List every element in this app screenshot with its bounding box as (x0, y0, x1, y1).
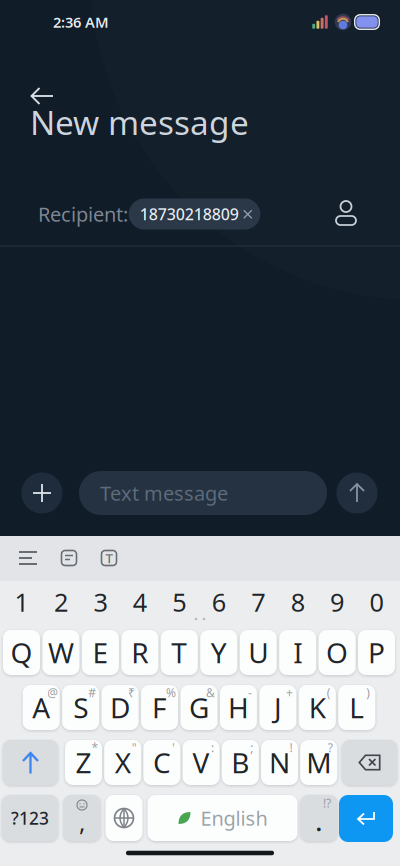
button[interactable]: 2 (42, 583, 79, 621)
staticText: Q (10, 634, 32, 671)
staticText: * (91, 739, 98, 755)
staticText: 7 (251, 585, 265, 619)
staticText: W (48, 634, 74, 671)
staticText: S (73, 689, 88, 726)
staticText: 4 (133, 585, 147, 619)
button[interactable]: C (143, 740, 180, 785)
button[interactable]: G (180, 685, 217, 730)
staticText: 3 (93, 585, 107, 619)
staticText: # (88, 684, 96, 700)
staticText: % (166, 684, 176, 700)
button[interactable]: 0 (358, 583, 395, 621)
staticText: U (248, 634, 268, 671)
button[interactable]: E (82, 630, 119, 675)
staticText: " (132, 739, 137, 755)
staticText: 6 (212, 585, 226, 619)
button[interactable]: Shift (3, 740, 58, 785)
staticText: + (286, 684, 293, 700)
staticText: H (228, 689, 249, 726)
button[interactable]: F (141, 685, 178, 730)
staticText: 9 (330, 585, 344, 619)
button[interactable]: Space (147, 795, 297, 841)
button[interactable]: Choose contact (332, 199, 360, 229)
staticText: 1 (14, 585, 28, 619)
button[interactable]: V (183, 740, 220, 785)
button[interactable]: Keyboard menu (11, 543, 45, 573)
staticText: !? (323, 795, 331, 811)
staticText: . (315, 806, 322, 838)
button[interactable]: J (259, 685, 296, 730)
button[interactable]: B (222, 740, 259, 785)
button[interactable]: Add attachment (21, 472, 62, 513)
staticText: 2:36 AM (53, 12, 109, 32)
button[interactable]: X (104, 740, 141, 785)
staticText: T (171, 634, 187, 671)
staticText: ₹ (128, 684, 135, 700)
button[interactable]: N (261, 740, 298, 785)
button[interactable]: K (299, 685, 336, 730)
button[interactable]: Symbols (2, 795, 58, 841)
button[interactable]: 3 (82, 583, 119, 621)
button[interactable]: Y (200, 630, 237, 675)
staticText: I (293, 634, 302, 671)
staticText: ) (366, 684, 370, 700)
button[interactable]: Send (336, 472, 377, 513)
button[interactable]: Text editing (93, 541, 124, 575)
button[interactable]: R (121, 630, 158, 675)
button[interactable]: D (102, 685, 139, 730)
staticText: R (131, 634, 148, 671)
button[interactable]: Switch language (105, 795, 142, 841)
staticText: ! (289, 739, 292, 755)
button[interactable]: Z (65, 740, 102, 785)
button[interactable]: 9 (319, 583, 356, 621)
staticText: K (309, 689, 326, 726)
button[interactable]: 6 (200, 583, 237, 621)
button[interactable]: A (23, 685, 60, 730)
staticText: Recipient: (38, 201, 128, 227)
staticText: - (248, 684, 252, 700)
button[interactable]: I (279, 630, 316, 675)
button[interactable]: 5 (161, 583, 198, 621)
button[interactable]: T (161, 630, 198, 675)
staticText: Y (211, 634, 227, 671)
staticText: E (92, 634, 108, 671)
button[interactable]: H (220, 685, 257, 730)
button[interactable]: Back (20, 77, 64, 115)
staticText: English (200, 805, 267, 831)
staticText: D (110, 689, 130, 726)
button[interactable]: Clipboard (53, 542, 84, 573)
staticText: ( (327, 684, 331, 700)
staticText: 5 (172, 585, 186, 619)
button[interactable]: Remove recipient 18730218809 (129, 198, 260, 229)
button[interactable]: Text message (79, 471, 327, 515)
button[interactable]: S (62, 685, 99, 730)
staticText: ? (328, 739, 333, 755)
staticText: T (105, 549, 112, 567)
button[interactable]: 8 (279, 583, 316, 621)
button[interactable]: O (319, 630, 356, 675)
button[interactable]: L (338, 685, 375, 730)
button[interactable]: P (358, 630, 395, 675)
staticText: , (79, 806, 85, 838)
button[interactable]: 4 (121, 583, 158, 621)
staticText: F (152, 689, 167, 726)
staticText: 0 (370, 585, 384, 619)
staticText: G (189, 689, 209, 726)
button[interactable]: Delete (342, 740, 397, 785)
button[interactable]: Comma (63, 795, 100, 841)
button[interactable]: Period (300, 795, 337, 841)
button[interactable]: Enter (339, 795, 393, 842)
staticText: V (193, 744, 210, 781)
staticText: : (211, 739, 214, 755)
button[interactable]: Q (3, 630, 40, 675)
staticText: ' (172, 739, 175, 755)
staticText: A (32, 689, 50, 726)
button[interactable]: 7 (240, 583, 277, 621)
staticText: New message (30, 100, 249, 144)
staticText: B (231, 744, 249, 781)
button[interactable]: M (300, 740, 337, 785)
button[interactable]: U (240, 630, 277, 675)
button[interactable]: 1 (3, 583, 40, 621)
button[interactable]: W (42, 630, 79, 675)
staticText: & (206, 684, 215, 700)
